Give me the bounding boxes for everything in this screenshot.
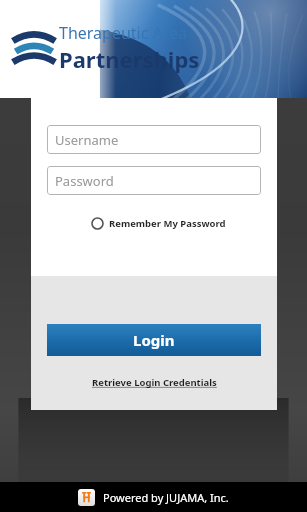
staticText: Therapeutic Area	[59, 22, 188, 44]
button[interactable]: Remember My Password	[91, 217, 226, 230]
staticText: Powered by JUJAMA, Inc.	[103, 490, 229, 505]
staticText: Retrieve Login Credentials	[92, 376, 217, 389]
button[interactable]: Login	[47, 324, 261, 356]
button[interactable]: Password	[47, 166, 261, 195]
staticText: Login	[133, 330, 175, 350]
other: JUJAMA logo	[78, 489, 95, 506]
staticText: Remember My Password	[109, 217, 226, 230]
button[interactable]: Username	[47, 125, 261, 154]
staticText: Partnerships	[59, 44, 200, 74]
button[interactable]: Retrieve Login Credentials	[92, 376, 217, 389]
staticText: Username	[55, 131, 119, 149]
staticText: Password	[55, 172, 114, 190]
